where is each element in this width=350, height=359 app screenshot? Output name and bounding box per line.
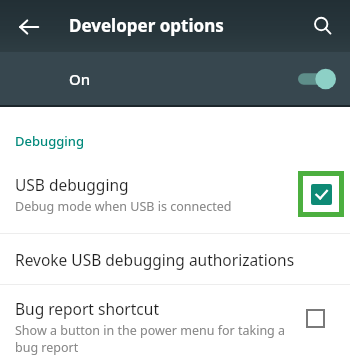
button[interactable]: Back: [11, 9, 47, 45]
staticText: Revoke USB debugging authorizations: [15, 249, 295, 270]
button[interactable]: Search: [305, 8, 341, 44]
button[interactable]: Revoke USB debugging authorizations: [0, 234, 350, 284]
staticText: Developer options: [69, 14, 224, 37]
button[interactable]: USB debugging: [0, 163, 350, 225]
button[interactable]: Bug report shortcut: [0, 285, 350, 359]
staticText: Debugging: [15, 132, 85, 150]
button[interactable]: USB debugging enabled: [303, 176, 339, 212]
button[interactable]: On: [0, 52, 350, 105]
staticText: USB debugging: [15, 174, 129, 195]
staticText: Debug mode when USB is connected: [15, 198, 232, 215]
staticText: Bug report shortcut: [15, 298, 159, 319]
button[interactable]: Bug report shortcut disabled: [300, 303, 330, 333]
staticText: On: [69, 69, 91, 89]
staticText: Show a button in the power menu for taki…: [15, 322, 294, 355]
button[interactable]: Developer options on: [296, 68, 338, 90]
